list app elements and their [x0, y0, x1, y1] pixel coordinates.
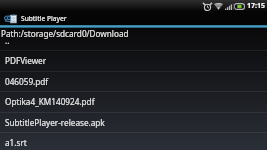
staticText: a1.srt [5, 137, 27, 148]
staticText: SubtitlePlayer-release.apk [5, 117, 105, 128]
other: Wi-Fi [214, 2, 223, 10]
other: Mobile signal [225, 3, 234, 10]
staticText: 17:15 [247, 1, 265, 11]
staticText: PDFViewer [5, 55, 47, 66]
other: Alarm set [203, 2, 212, 11]
button[interactable]: .. [0, 30, 267, 51]
staticText: 046059.pdf [5, 76, 49, 87]
button[interactable]: Subtitle Player [0, 12, 267, 25]
staticText: Subtitle Player [21, 14, 67, 23]
button[interactable]: a1.srt [0, 132, 267, 150]
staticText: Path:/storage/sdcard0/Download [1, 28, 129, 39]
button[interactable]: 046059.pdf [0, 71, 267, 91]
button[interactable]: Optika4_KM140924.pdf [0, 91, 267, 111]
button[interactable]: SubtitlePlayer-release.apk [0, 112, 267, 132]
button[interactable]: PDFViewer [0, 50, 267, 70]
staticText: .. [5, 35, 10, 46]
other: Battery [234, 3, 245, 10]
staticText: Optika4_KM140924.pdf [5, 96, 95, 107]
